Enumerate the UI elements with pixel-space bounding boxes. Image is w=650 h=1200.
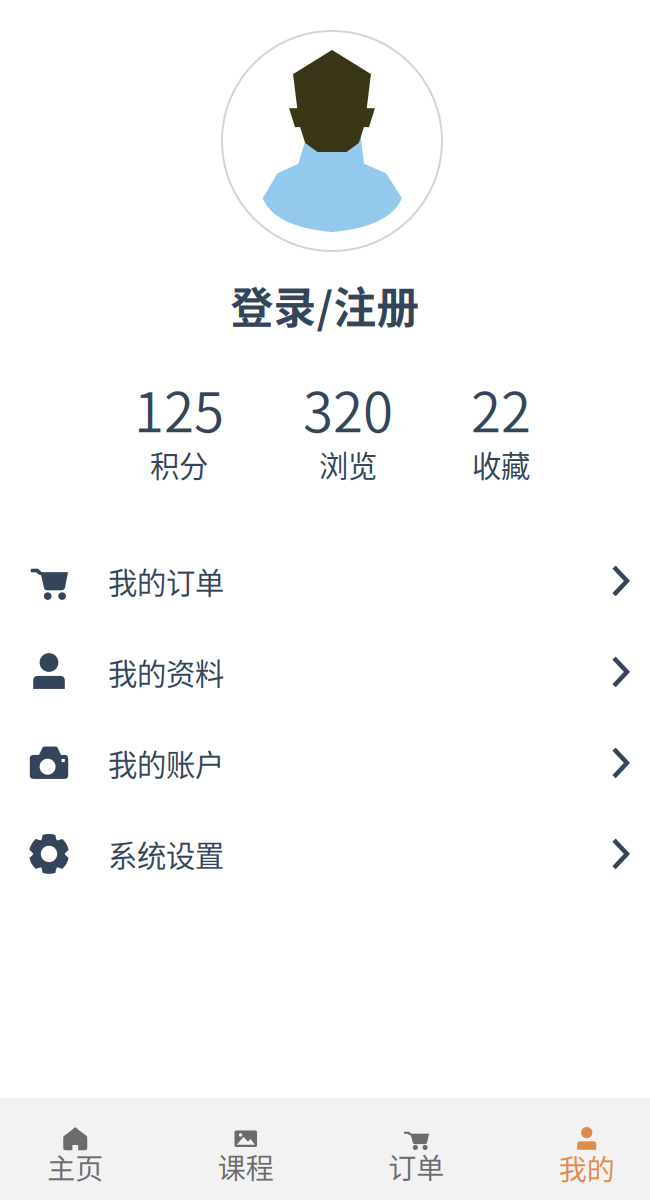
staticText: 我的: [559, 1148, 615, 1188]
staticText: 课程: [218, 1146, 274, 1187]
staticText: 我的账户: [108, 742, 224, 784]
staticText: 订单: [388, 1146, 444, 1187]
staticText: 320: [303, 369, 393, 448]
staticText: 系统设置: [108, 833, 224, 875]
button[interactable]: 订单: [325, 1092, 487, 1200]
staticText: 125: [134, 369, 224, 448]
staticText: 登录/注册: [230, 274, 419, 336]
staticText: 浏览: [319, 443, 377, 485]
staticText: 我的订单: [108, 560, 224, 602]
staticText: 积分: [150, 443, 208, 485]
staticText: 主页: [47, 1147, 103, 1187]
button[interactable]: 我的订单: [0, 535, 650, 626]
staticText: 22: [471, 369, 531, 448]
button[interactable]: 我的: [487, 1091, 650, 1200]
staticText: 我的资料: [108, 651, 224, 693]
button[interactable]: 系统设置: [0, 808, 650, 899]
staticText: 收藏: [472, 443, 530, 485]
button[interactable]: 主页: [0, 1092, 162, 1200]
button[interactable]: 我的资料: [0, 626, 650, 717]
button[interactable]: 我的账户: [0, 717, 650, 808]
button[interactable]: 课程: [162, 1092, 325, 1200]
button[interactable]: 登录/注册: [206, 251, 443, 346]
